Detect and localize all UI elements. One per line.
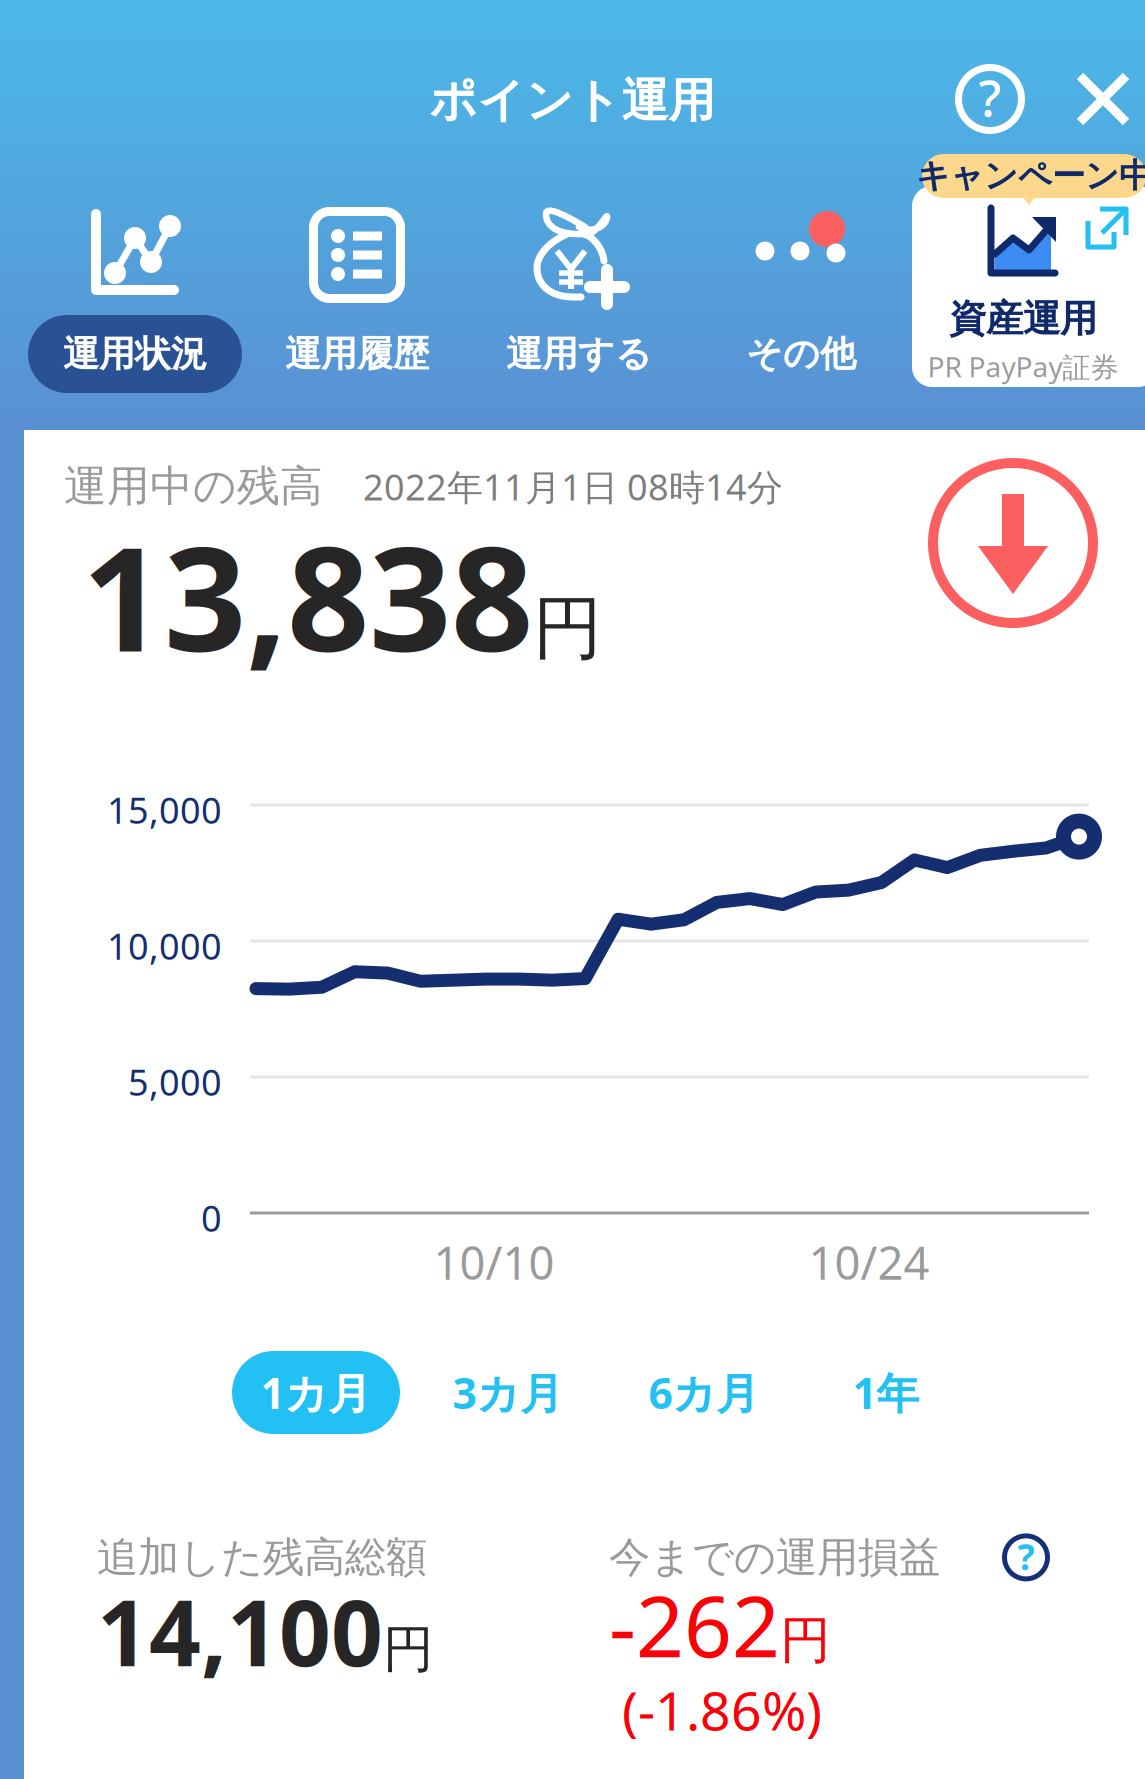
staticText: 運用履歴 [285,332,429,376]
button[interactable]: 1カ月 [232,1351,400,1434]
button[interactable]: 運用損益について [1002,1533,1050,1581]
staticText: 2022年11月1日 08時14分 [363,462,783,510]
button[interactable]: キャンペーン中 [912,153,1145,393]
staticText: 13,838 [82,500,533,691]
staticText: 運用中の残高 [64,460,323,512]
staticText: 3カ月 [452,1364,563,1421]
staticText: その他 [746,332,856,376]
staticText: ? [978,63,1001,131]
staticText: 10,000 [107,922,222,970]
staticText: 円 [383,1618,434,1680]
staticText: (-1.86%) [622,1674,822,1745]
staticText: 1カ月 [260,1364,371,1421]
button[interactable]: 運用する [468,207,690,407]
staticText: 円 [780,1609,831,1671]
staticText: -262 [609,1569,780,1680]
button[interactable]: 運用状況 [24,207,246,407]
staticText: 10/10 [433,1232,554,1292]
button[interactable]: 1年 [836,1351,936,1434]
button[interactable]: 引き出す [928,458,1098,628]
staticText: PR PayPay証券 [927,348,1118,385]
button[interactable]: その他 [690,207,912,407]
staticText: 6カ月 [648,1364,759,1421]
staticText: 14,100 [97,1571,383,1691]
button[interactable]: 6カ月 [634,1351,774,1434]
button[interactable]: ヘルプ [955,64,1025,134]
staticText: 15,000 [107,786,222,834]
staticText: 運用する [506,332,652,376]
staticText: キャンペーン中 [916,155,1145,196]
button[interactable]: 閉じる [1075,71,1131,127]
staticText: 資産運用 [949,296,1097,342]
staticText: 10/24 [808,1232,929,1292]
staticText: 1年 [852,1364,919,1421]
staticText: ? [1017,1532,1034,1580]
staticText: 追加した残高総額 [97,1532,427,1583]
staticText: 0 [201,1194,222,1242]
staticText: 運用状況 [63,332,207,376]
staticText: 円 [533,586,602,671]
button[interactable]: 運用履歴 [246,207,468,407]
button[interactable]: 3カ月 [438,1351,578,1434]
staticText: 今までの運用損益 [609,1532,940,1583]
staticText: 5,000 [128,1058,222,1106]
staticText: ポイント運用 [429,72,715,129]
